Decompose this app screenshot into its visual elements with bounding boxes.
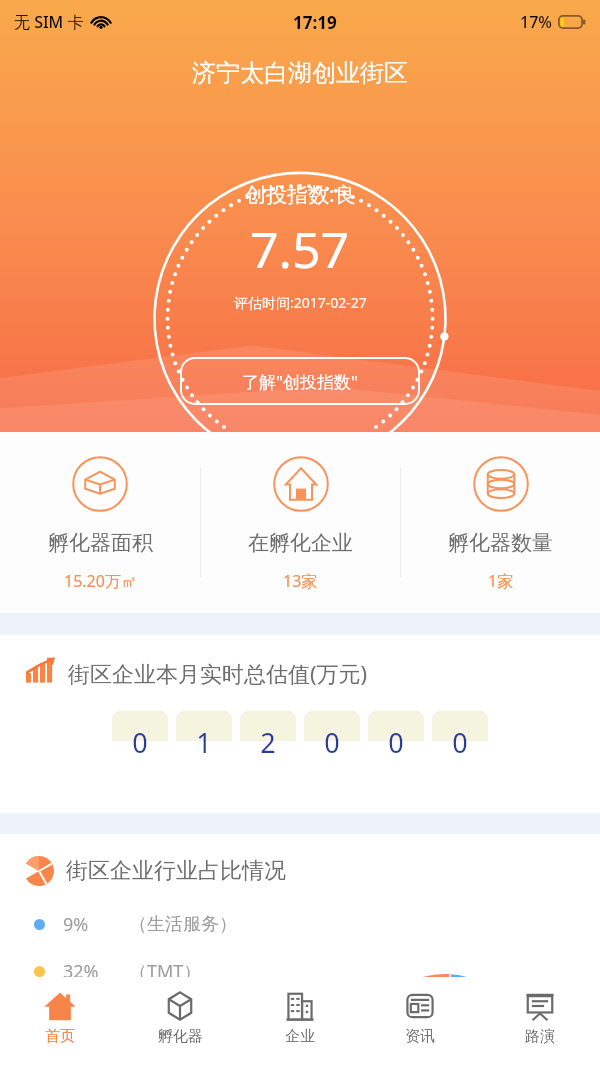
button[interactable]: 孵化器	[120, 977, 240, 1065]
button[interactable]: 了解"创投指数"	[180, 357, 420, 405]
button[interactable]: 企业	[240, 977, 360, 1065]
button[interactable]: 资讯	[360, 977, 480, 1065]
staticText: 0	[452, 724, 468, 761]
staticText: 街区企业本月实时总估值(万元)	[68, 658, 368, 688]
staticText: 0	[132, 724, 148, 761]
staticText: 孵化器面积	[48, 530, 153, 556]
staticText: 7.57	[250, 215, 350, 283]
button[interactable]: 路演	[480, 977, 600, 1065]
staticText: 1家	[488, 570, 514, 592]
button[interactable]: 孵化器数量	[401, 432, 600, 613]
staticText: 无 SIM 卡	[14, 11, 84, 33]
staticText: 创投指数:良	[245, 180, 356, 209]
button[interactable]: 首页	[0, 977, 120, 1065]
staticText: 资讯	[405, 1027, 435, 1046]
staticText: 2	[260, 724, 276, 761]
staticText: 企业	[285, 1027, 315, 1046]
staticText: 了解"创投指数"	[242, 370, 358, 393]
staticText: 9%	[63, 912, 89, 937]
staticText: 首页	[45, 1027, 75, 1046]
staticText: 17%	[520, 11, 552, 33]
staticText: 32%	[63, 959, 99, 984]
staticText: 13家	[283, 570, 318, 592]
staticText: 15.20万㎡	[64, 570, 137, 592]
staticText: 评估时间:2017-02-27	[234, 293, 367, 312]
staticText: 17:19	[293, 11, 337, 34]
staticText: 孵化器数量	[448, 530, 553, 556]
staticText: 0	[388, 724, 404, 761]
staticText: （生活服务）	[129, 913, 237, 936]
staticText: 济宁太白湖创业街区	[192, 58, 408, 88]
staticText: （TMT）	[129, 959, 202, 984]
staticText: 孵化器	[158, 1027, 203, 1046]
button[interactable]: 在孵化企业	[201, 432, 400, 613]
button[interactable]: 孵化器面积	[0, 432, 200, 613]
staticText: 街区企业行业占比情况	[66, 857, 286, 885]
staticText: 在孵化企业	[248, 530, 353, 556]
staticText: 0	[324, 724, 340, 761]
staticText: 路演	[525, 1027, 555, 1046]
staticText: 1	[196, 724, 212, 761]
